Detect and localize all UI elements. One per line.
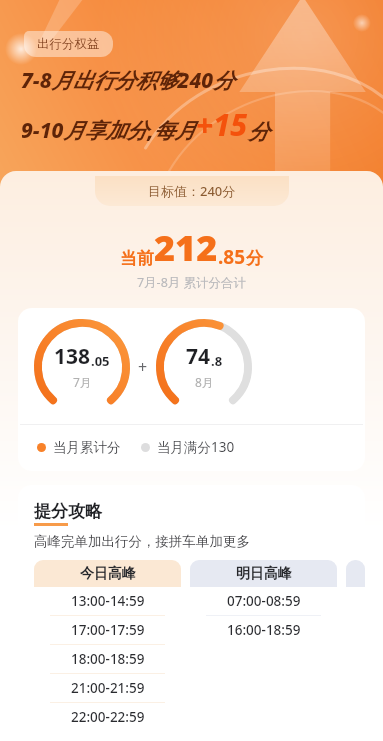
staticText: 138 xyxy=(54,342,91,371)
staticText: 16:00-18:59 xyxy=(227,621,301,639)
staticText: 17:00-17:59 xyxy=(71,621,145,639)
staticText: 当月满分130 xyxy=(157,438,235,456)
staticText: .85 xyxy=(218,244,246,270)
staticText: 目标值：240分 xyxy=(148,182,236,200)
staticText: .8 xyxy=(211,352,223,370)
staticText: +15 xyxy=(196,104,248,145)
button[interactable]: 出行分权益 xyxy=(24,31,113,57)
staticText: 7月-8月 累计分合计 xyxy=(0,274,383,291)
staticText: 7-8月出行分积够240分 xyxy=(21,66,235,95)
button[interactable]: 今日高峰 xyxy=(34,560,181,731)
staticText: .05 xyxy=(91,352,110,370)
staticText: 提分攻略 xyxy=(34,501,102,522)
staticText: 分 xyxy=(246,248,263,269)
button[interactable] xyxy=(346,560,365,587)
staticText: 7月 xyxy=(73,374,92,390)
staticText: 高峰完单加出行分，接拼车单加更多 xyxy=(34,533,250,550)
staticText: 07:00-08:59 xyxy=(227,592,301,610)
staticText: 当月累计分 xyxy=(53,439,121,456)
staticText: 21:00-21:59 xyxy=(71,679,145,697)
button[interactable]: 明日高峰 xyxy=(190,560,337,644)
staticText: + xyxy=(138,356,148,378)
staticText: 出行分权益 xyxy=(37,36,100,52)
staticText: 今日高峰 xyxy=(80,565,136,583)
staticText: 74 xyxy=(186,342,211,371)
staticText: 22:00-22:59 xyxy=(71,708,145,726)
staticText: 212 xyxy=(154,223,218,272)
staticText: 9-10月享加分,每月 xyxy=(21,116,196,145)
staticText: 当前 xyxy=(120,248,154,269)
staticText: 明日高峰 xyxy=(236,565,292,583)
staticText: 13:00-14:59 xyxy=(71,592,145,610)
staticText: 8月 xyxy=(195,374,214,390)
staticText: 分 xyxy=(248,119,269,145)
staticText: 18:00-18:59 xyxy=(71,650,145,668)
